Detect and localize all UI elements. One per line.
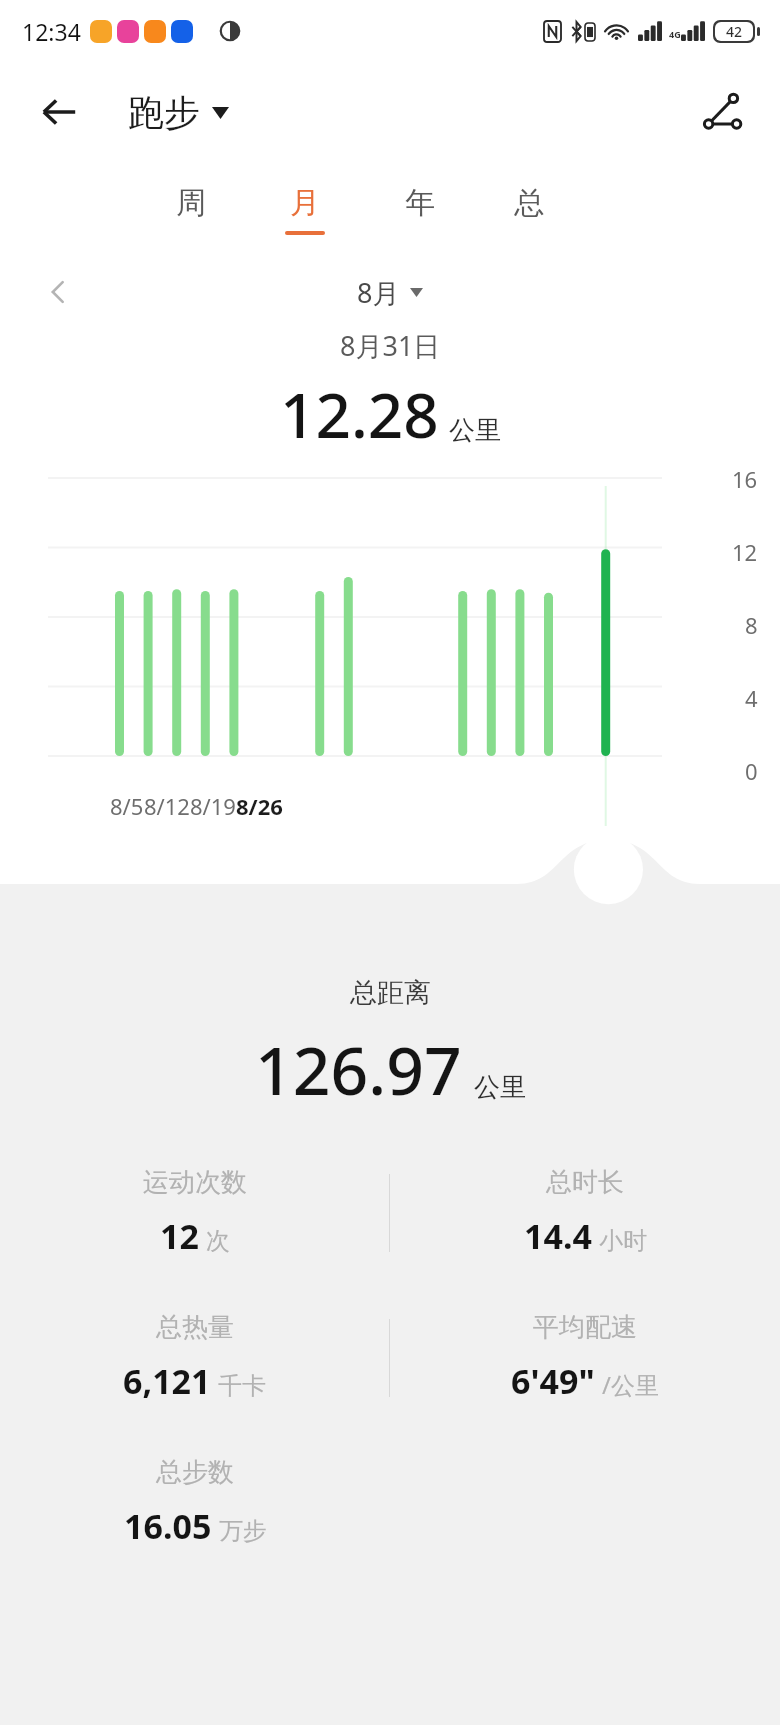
staticText: 周 xyxy=(176,184,206,222)
button[interactable]: 总时长 xyxy=(390,1166,780,1259)
staticText: 跑步 xyxy=(128,90,200,135)
staticText: /公里 xyxy=(602,1368,659,1401)
staticText: 0 xyxy=(745,756,758,786)
button[interactable]: 月 xyxy=(279,180,331,239)
staticText: 月 xyxy=(290,184,320,222)
button[interactable]: 总热量 xyxy=(0,1311,389,1404)
button[interactable]: Previous month xyxy=(36,270,80,314)
button[interactable]: Share xyxy=(696,85,750,139)
button[interactable]: 周 xyxy=(170,180,212,239)
staticText: 16.05 xyxy=(124,1503,212,1549)
staticText: 公里 xyxy=(474,1071,526,1104)
staticText: 小时 xyxy=(599,1226,647,1256)
staticText: 126.97 xyxy=(255,1024,462,1114)
staticText: 年 xyxy=(405,184,435,222)
button[interactable]: Back xyxy=(34,87,84,137)
staticText: 12 xyxy=(732,537,758,567)
staticText: 8/12 xyxy=(144,791,190,821)
staticText: 6'49" xyxy=(511,1358,595,1404)
staticText: 总 xyxy=(514,184,544,222)
staticText: 8/26 xyxy=(236,791,283,821)
staticText: 8月 xyxy=(357,274,400,311)
staticText: 千卡 xyxy=(218,1371,266,1401)
button[interactable]: 跑步 xyxy=(128,90,229,135)
staticText: 总步数 xyxy=(156,1456,234,1489)
staticText: 14.4 xyxy=(524,1213,592,1259)
staticText: 总时长 xyxy=(546,1166,624,1199)
staticText: 公里 xyxy=(449,414,501,447)
button[interactable]: 总步数 xyxy=(0,1456,390,1549)
staticText: 总热量 xyxy=(156,1311,234,1344)
staticText: 8/19 xyxy=(190,791,236,821)
staticText: 8月31日 xyxy=(340,327,441,364)
staticText: 4G xyxy=(669,28,681,40)
staticText: 42 xyxy=(726,22,743,41)
button[interactable]: 8月 xyxy=(357,274,423,311)
staticText: 12.28 xyxy=(280,372,439,456)
button[interactable]: 运动次数 xyxy=(0,1166,389,1259)
button[interactable]: 总 xyxy=(508,180,550,239)
staticText: 8/5 xyxy=(110,791,144,821)
staticText: 万步 xyxy=(219,1516,267,1546)
staticText: 12:34 xyxy=(22,16,81,47)
staticText: 运动次数 xyxy=(143,1166,247,1199)
staticText: 12 xyxy=(160,1213,199,1259)
staticText: 8 xyxy=(745,610,758,640)
staticText: 总距离 xyxy=(350,976,431,1010)
button[interactable]: 平均配速 xyxy=(390,1311,780,1404)
staticText: 16 xyxy=(732,464,758,494)
staticText: 平均配速 xyxy=(533,1311,637,1344)
staticText: 4 xyxy=(745,683,758,713)
button[interactable]: 年 xyxy=(399,180,441,239)
staticText: 次 xyxy=(206,1226,230,1256)
staticText: 6,121 xyxy=(123,1358,211,1404)
